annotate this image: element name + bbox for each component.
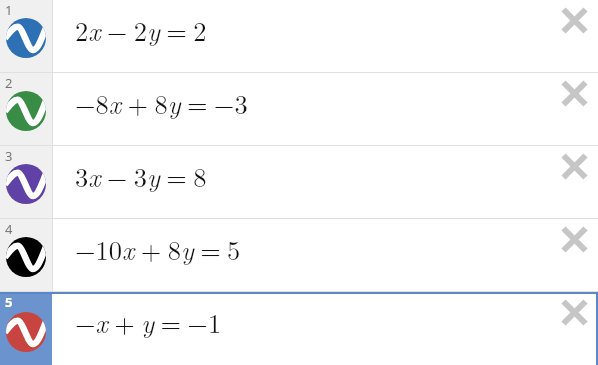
button[interactable]: 3: [0, 146, 598, 219]
button[interactable]: 2: [0, 73, 598, 146]
staticText: 3: [5, 147, 13, 165]
staticText: 4: [5, 220, 13, 238]
button[interactable]: [562, 154, 587, 179]
button[interactable]: 4: [0, 219, 598, 292]
button[interactable]: [562, 300, 587, 325]
staticText: 3x − 3y = 8: [75, 157, 207, 195]
button[interactable]: 5: [0, 292, 598, 365]
staticText: 1: [5, 1, 13, 19]
staticText: −x + y = −1: [75, 303, 222, 341]
button[interactable]: [562, 81, 587, 106]
button[interactable]: [562, 227, 587, 252]
staticText: 2: [5, 74, 13, 92]
button[interactable]: 1: [0, 0, 598, 73]
staticText: 5: [5, 293, 13, 311]
button[interactable]: [562, 8, 587, 33]
staticText: 2x − 2y = 2: [75, 11, 207, 49]
staticText: −8x + 8y = −3: [75, 84, 248, 122]
staticText: −10x + 8y = 5: [75, 230, 241, 268]
